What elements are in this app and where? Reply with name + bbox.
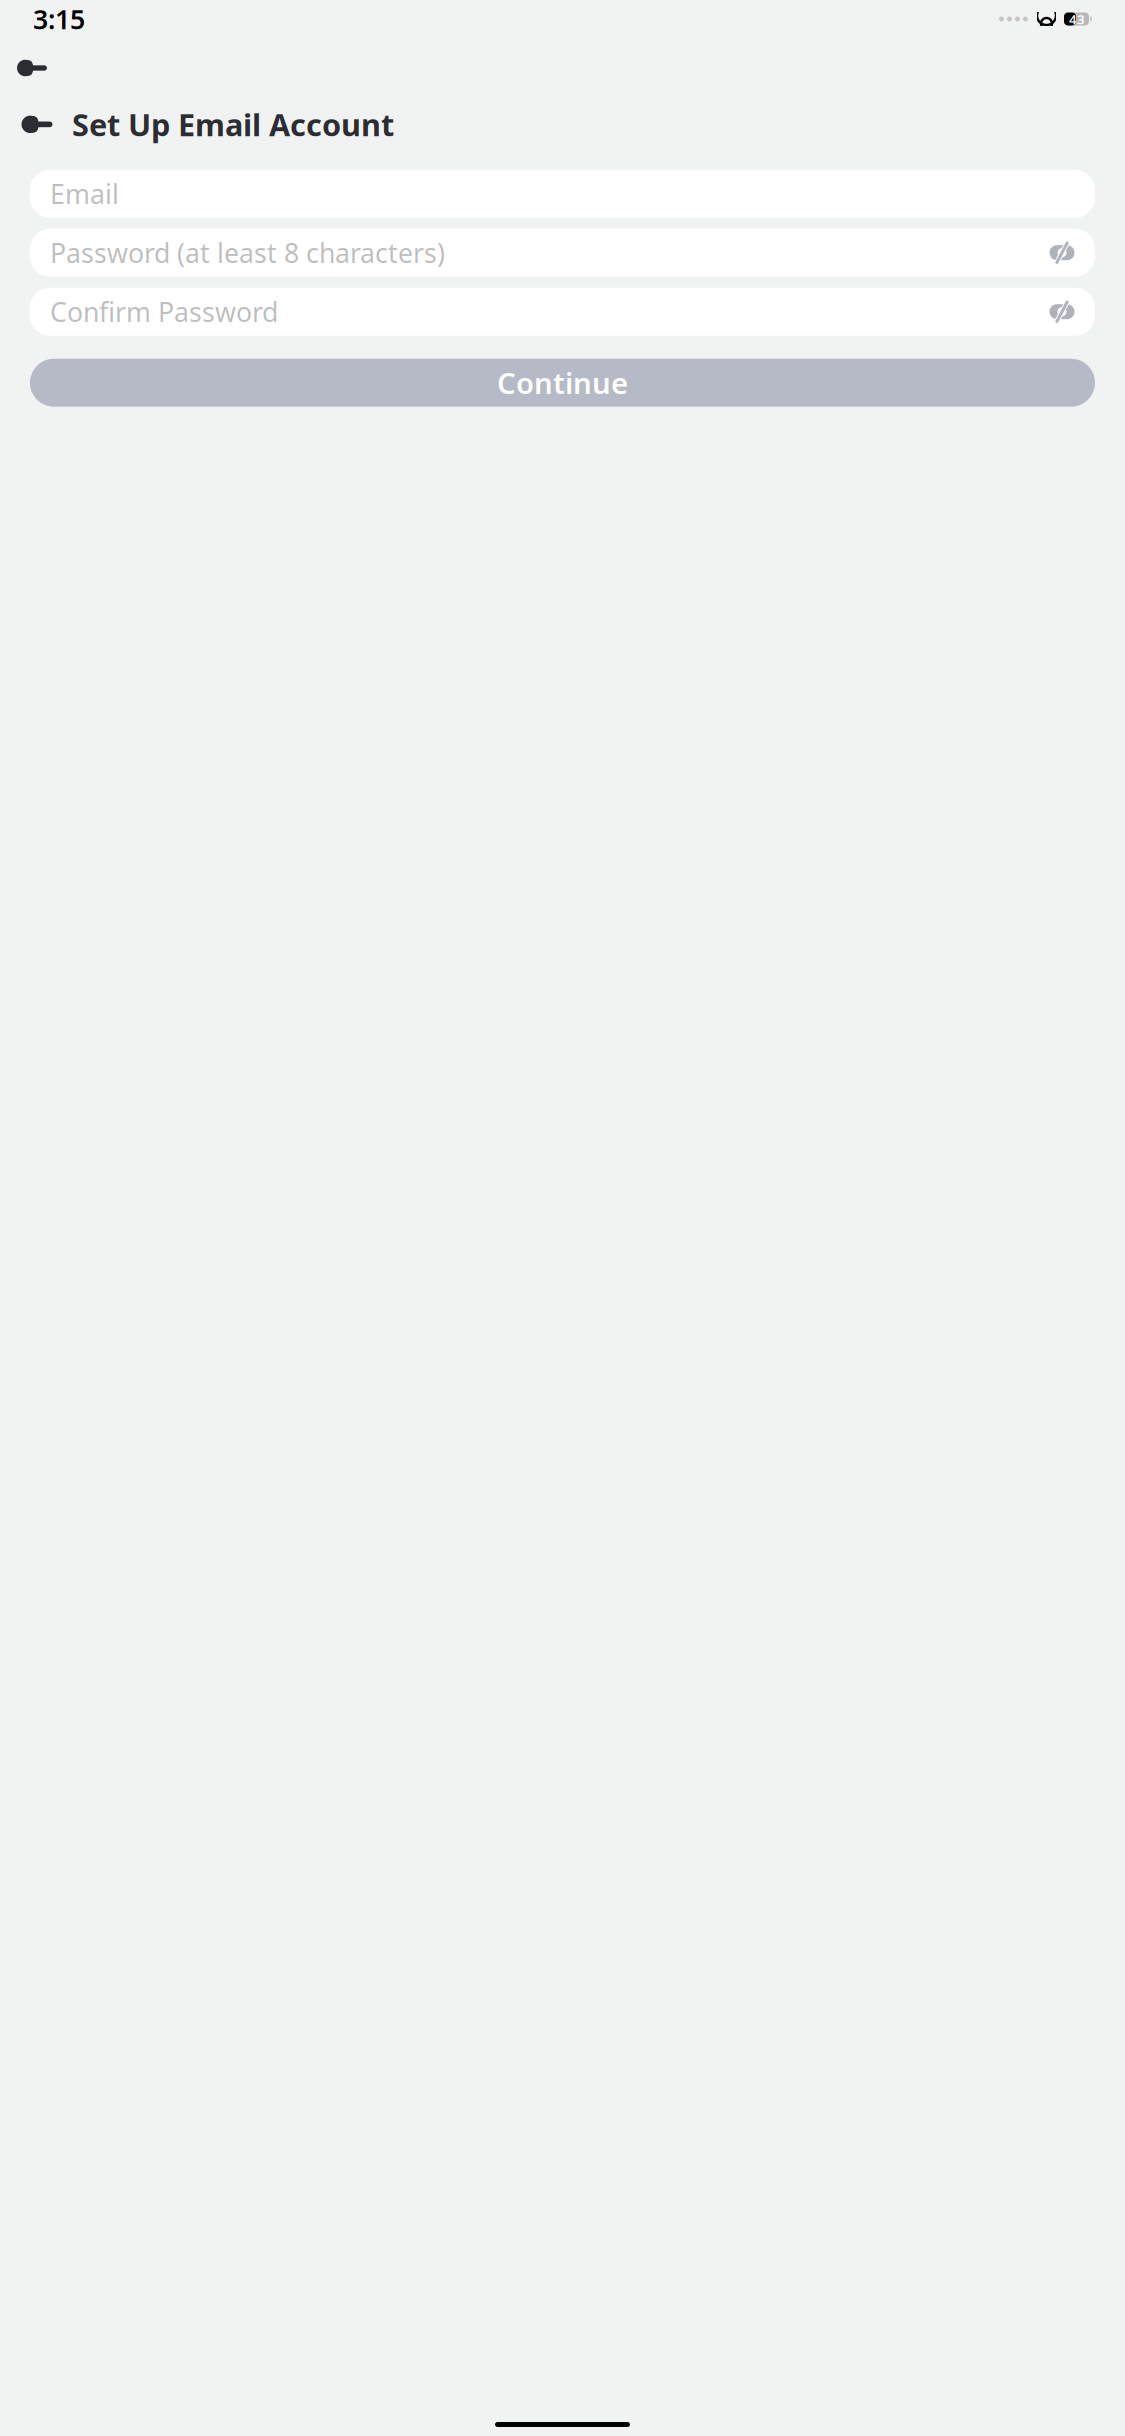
staticText: Set Up Email Account — [72, 104, 394, 145]
button[interactable]: Continue — [30, 359, 1095, 407]
button[interactable]: Email — [30, 170, 1095, 218]
button[interactable]: Back — [14, 104, 60, 144]
staticText: Email — [50, 176, 119, 211]
staticText: Continue — [497, 363, 628, 402]
staticText: Confirm Password — [50, 294, 278, 329]
staticText: 3:15 — [33, 1, 85, 37]
button[interactable]: Back — [10, 50, 54, 86]
button[interactable]: Password (at least 8 characters) — [30, 229, 1095, 277]
button[interactable]: Confirm Password — [30, 288, 1095, 336]
staticText: 43 — [1069, 10, 1085, 28]
staticText: Password (at least 8 characters) — [50, 235, 445, 270]
